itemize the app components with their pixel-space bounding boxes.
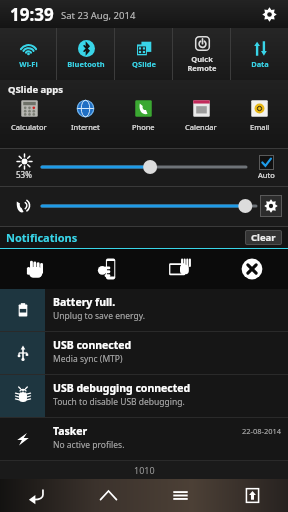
staticText: Unplug to save energy. [53,310,145,322]
staticText: No active profiles. [53,439,125,451]
button[interactable]: Volume [42,186,256,226]
button[interactable]: Tasker [0,418,288,460]
staticText: Battery full. [53,295,116,309]
button[interactable]: Recents [144,479,216,512]
button[interactable]: Flip phone [72,249,144,289]
staticText: USB connected [53,338,132,352]
staticText: Internet [71,122,100,132]
button[interactable]: Bluetooth [57,28,114,80]
staticText: Calculator [11,122,47,132]
button[interactable]: Calculator [0,96,57,148]
button[interactable]: USB connected [0,332,288,374]
button[interactable]: Close [216,249,288,289]
staticText: Clear [251,231,276,244]
staticText: Email [250,122,270,132]
button[interactable]: QSlide [115,28,172,80]
staticText: Wi-Fi [19,59,38,69]
button[interactable]: Auto brightness [250,155,282,180]
staticText: Auto [258,170,275,180]
staticText: Phone [132,122,155,132]
button[interactable]: Settings [256,1,282,27]
button[interactable]: Sound settings [260,195,282,217]
staticText: Quick Remote [187,54,217,73]
staticText: Sat 23 Aug, 2014 [61,9,136,22]
staticText: Calendar [185,122,217,132]
staticText: Notifications [6,230,78,245]
staticText: Bluetooth [67,59,105,69]
staticText: Data [251,59,269,69]
staticText: 22-08-2014 [242,426,282,436]
button[interactable]: Battery full. [0,289,288,331]
button[interactable]: Home [72,479,144,512]
button[interactable]: USB debugging connected [0,375,288,417]
staticText: USB debugging connected [53,381,191,395]
button[interactable]: Swipe gesture [144,249,216,289]
button[interactable]: Internet [57,96,114,148]
button[interactable]: Data [231,28,288,80]
staticText: Touch to disable USB debugging. [53,396,185,408]
staticText: 53% [16,169,32,180]
button[interactable]: Calendar [172,96,230,148]
button[interactable]: Capture [216,479,288,512]
button[interactable]: Phone [114,96,172,148]
button[interactable]: Quick Remote [173,28,230,80]
button[interactable]: Wi-Fi [0,28,56,80]
button[interactable]: Clear [245,230,282,245]
staticText: Tasker [53,424,88,438]
button[interactable]: Back [0,479,72,512]
button[interactable]: Brightness [42,148,246,186]
staticText: Media sync (MTP) [53,353,123,365]
staticText: QSlide apps [8,83,64,96]
button[interactable]: Email [230,96,288,148]
staticText: 1010 [134,464,155,476]
staticText: 19:39 [10,3,54,26]
staticText: QSlide [132,59,156,69]
button[interactable]: Hand gesture [0,249,72,289]
